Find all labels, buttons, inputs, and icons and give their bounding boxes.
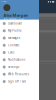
staticText: Messages <box>8 36 20 40</box>
staticText: Notifications <box>8 58 25 61</box>
button[interactable]: Contacts <box>0 42 39 49</box>
button[interactable]: My Profile <box>0 27 39 34</box>
staticText: My Profile <box>8 29 22 32</box>
staticText: Calls <box>8 51 14 54</box>
staticText: Sign Off / Exit <box>8 80 26 83</box>
staticText: Contacts <box>8 43 19 47</box>
button[interactable]: Sign Off / Exit <box>0 78 39 85</box>
button[interactable]: Settings <box>0 63 39 71</box>
staticText: Web Resources <box>8 72 29 76</box>
staticText: Settings <box>8 65 19 69</box>
staticText: alex.m@mail.com <box>3 18 23 21</box>
button[interactable]: Calls <box>0 49 39 56</box>
button[interactable]: Messages <box>0 34 39 42</box>
staticText: Dashboard <box>8 22 22 25</box>
button[interactable]: Notifications <box>0 56 39 63</box>
staticText: Alex Morgan <box>3 12 28 18</box>
button[interactable]: Dashboard <box>0 20 39 27</box>
button[interactable]: Web Resources <box>0 71 39 78</box>
